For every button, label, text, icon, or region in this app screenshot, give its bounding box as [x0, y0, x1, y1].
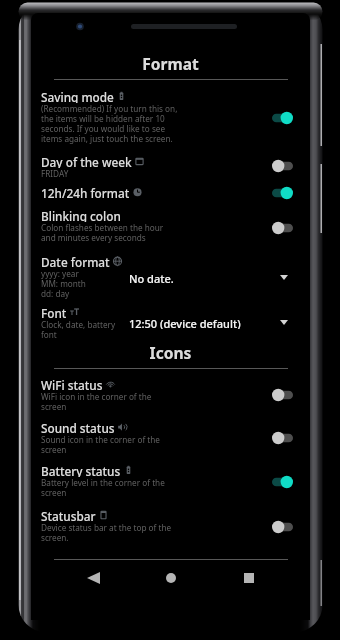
staticText: Colon flashes between the hour and minut… — [41, 222, 164, 244]
staticText: Statusbar — [41, 508, 96, 522]
staticText: Clock, date, battery font — [41, 319, 116, 341]
staticText: Date format — [41, 254, 110, 268]
button[interactable]: Recent apps — [234, 563, 264, 593]
staticText: Saving mode — [41, 89, 114, 103]
staticText: Battery status — [41, 463, 121, 477]
staticText: Battery level in the corner of the scree… — [41, 477, 165, 499]
button[interactable]: Font — [31, 305, 310, 337]
button[interactable]: Switch off — [272, 520, 293, 534]
staticText: Format — [31, 53, 310, 74]
staticText: Blinking colon — [41, 208, 121, 222]
button[interactable]: Blinking colon — [31, 208, 310, 254]
button[interactable]: Back — [78, 563, 108, 593]
button[interactable]: Day of the week — [31, 154, 310, 185]
button[interactable]: Sound status — [31, 420, 310, 463]
staticText: No date. — [129, 271, 174, 284]
staticText: 12:50 (device default) — [129, 316, 241, 329]
button[interactable]: Switch off — [272, 388, 293, 402]
button[interactable]: Switch off — [272, 159, 293, 173]
button[interactable]: Switch on — [272, 186, 293, 200]
staticText: Icons — [31, 342, 310, 363]
staticText: Font — [41, 305, 67, 319]
button[interactable]: Home — [156, 563, 186, 593]
button[interactable]: Date format — [31, 254, 310, 305]
button[interactable]: WiFi status — [31, 377, 310, 420]
button[interactable]: Switch on — [272, 475, 293, 489]
staticText: Device status bar at the top of the scre… — [41, 522, 172, 544]
staticText: Sound status — [41, 420, 115, 434]
button[interactable]: Switch off — [272, 221, 293, 235]
staticText: 12h/24h format — [41, 185, 130, 199]
button[interactable]: 12h/24h format — [31, 185, 310, 208]
button[interactable]: Switch off — [272, 431, 293, 445]
staticText: WiFi icon in the corner of the screen — [41, 391, 152, 413]
staticText: (Recommended) If you turn this on, the i… — [41, 103, 178, 145]
staticText: FRIDAY — [41, 168, 69, 179]
button[interactable]: Saving mode — [31, 89, 310, 154]
staticText: Sound icon in the corner of the screen — [41, 434, 160, 456]
button[interactable]: Switch on — [272, 111, 293, 125]
staticText: yyyy: year MM: month dd: day — [41, 268, 86, 300]
staticText: WiFi status — [41, 377, 103, 391]
button[interactable]: Statusbar — [31, 508, 310, 552]
staticText: Day of the week — [41, 154, 132, 168]
button[interactable]: Battery status — [31, 463, 310, 508]
